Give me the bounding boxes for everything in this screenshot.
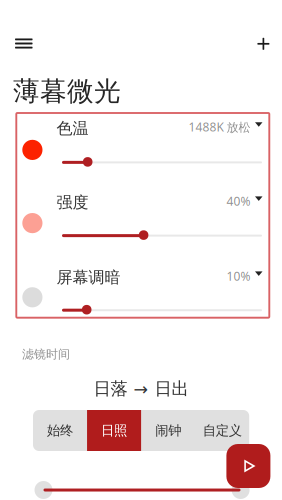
staticText: 40% (226, 193, 250, 209)
staticText: 闹钟 (155, 422, 181, 439)
staticText: 10% (226, 268, 250, 284)
staticText: 色温 (56, 118, 88, 138)
button[interactable]: Play (226, 444, 270, 488)
button[interactable]: 日照 (87, 410, 141, 451)
staticText: 日照 (101, 422, 127, 439)
button[interactable]: 闹钟 (141, 410, 195, 451)
staticText: 1488K 放松 (188, 119, 250, 135)
button[interactable]: 始终 (33, 410, 87, 451)
staticText: 滤镜时间 (22, 347, 70, 362)
staticText: 始终 (47, 422, 73, 439)
staticText: 屏幕调暗 (56, 268, 120, 287)
staticText: 日落 → 日出 (93, 378, 188, 399)
staticText: 自定义 (203, 422, 242, 439)
button[interactable]: 自定义 (195, 410, 249, 451)
button[interactable]: Add (241, 22, 282, 66)
staticText: 薄暮微光 (13, 75, 121, 108)
staticText: 强度 (56, 193, 88, 212)
button[interactable]: Menu (2, 21, 46, 65)
